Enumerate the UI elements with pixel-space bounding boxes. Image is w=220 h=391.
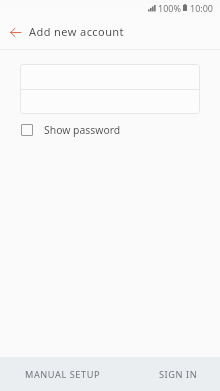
button[interactable]: SIGN IN (140, 357, 220, 391)
staticText: SIGN IN (159, 368, 198, 381)
staticText: Show password (44, 123, 121, 137)
button[interactable]: MANUAL SETUP (0, 357, 110, 391)
button[interactable] (20, 64, 200, 89)
staticText: MANUAL SETUP (25, 368, 101, 381)
staticText: Add new account (29, 24, 124, 39)
button[interactable]: Show password (21, 121, 121, 139)
button[interactable] (20, 90, 200, 114)
button[interactable]: Back (3, 20, 27, 44)
staticText: 10:00 (190, 2, 214, 14)
staticText: 100% (158, 2, 181, 14)
